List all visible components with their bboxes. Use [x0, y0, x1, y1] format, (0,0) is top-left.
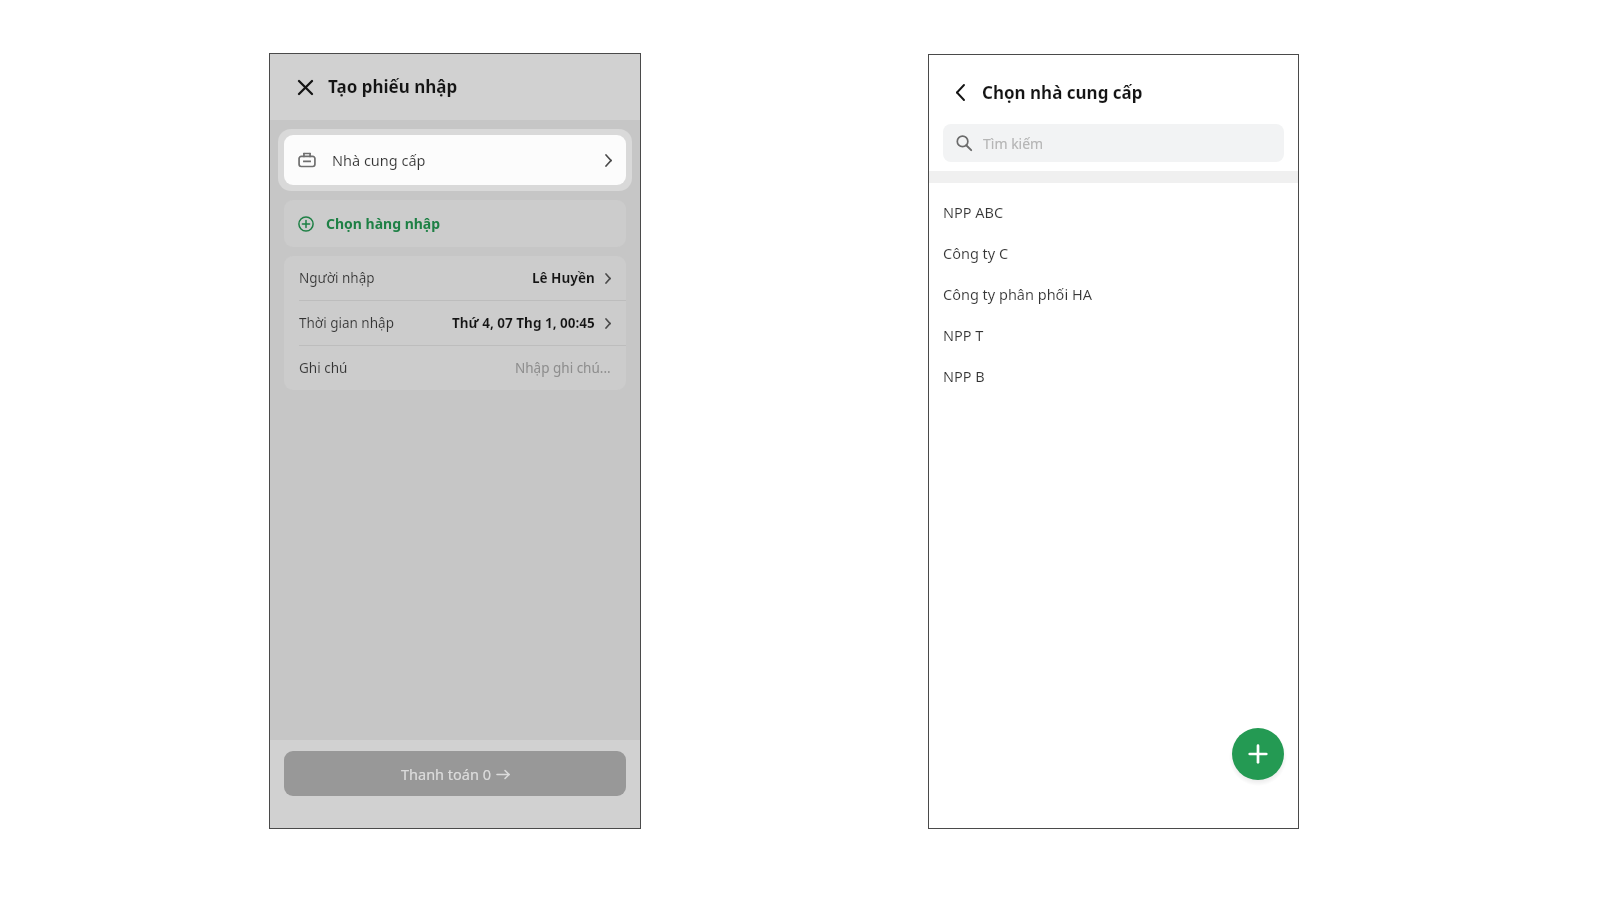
button[interactable]: Thời gian nhập — [284, 301, 626, 345]
button[interactable]: NPP ABC — [928, 191, 1299, 232]
button[interactable]: Đóng — [291, 73, 319, 101]
staticText: Công ty phân phối HA — [943, 284, 1092, 304]
staticText: Lê Huyền — [532, 269, 595, 287]
staticText: Công ty C — [943, 243, 1009, 263]
staticText: Ghi chú — [299, 359, 348, 377]
staticText: Tìm kiếm — [983, 134, 1044, 153]
staticText: Nhập ghi chú... — [515, 359, 611, 377]
button[interactable]: Thêm nhà cung cấp — [1232, 728, 1284, 780]
button[interactable]: Quay lại — [947, 79, 974, 106]
staticText: Thứ 4, 07 Thg 1, 00:45 — [452, 314, 595, 332]
button[interactable]: Ghi chú — [284, 346, 626, 390]
button[interactable]: Công ty phân phối HA — [928, 273, 1299, 314]
staticText: Chọn nhà cung cấp — [982, 81, 1143, 104]
button[interactable]: Thanh toán 0 — [284, 751, 626, 796]
button[interactable]: Tìm kiếm — [943, 124, 1284, 162]
staticText: Tạo phiếu nhập — [328, 75, 458, 98]
staticText: Thời gian nhập — [299, 314, 394, 332]
staticText: NPP ABC — [943, 202, 1004, 222]
staticText: Chọn hàng nhập — [326, 214, 441, 233]
button[interactable]: Nhà cung cấp — [284, 135, 626, 185]
staticText: NPP T — [943, 325, 984, 345]
button[interactable]: NPP T — [928, 314, 1299, 355]
button[interactable]: Người nhập — [284, 256, 626, 300]
staticText: Nhà cung cấp — [332, 150, 426, 170]
button[interactable]: Chọn hàng nhập — [284, 200, 626, 247]
staticText: NPP B — [943, 366, 985, 386]
button[interactable]: Công ty C — [928, 232, 1299, 273]
button[interactable]: NPP B — [928, 355, 1299, 396]
staticText: Thanh toán 0 — [401, 764, 492, 784]
staticText: Người nhập — [299, 269, 375, 287]
